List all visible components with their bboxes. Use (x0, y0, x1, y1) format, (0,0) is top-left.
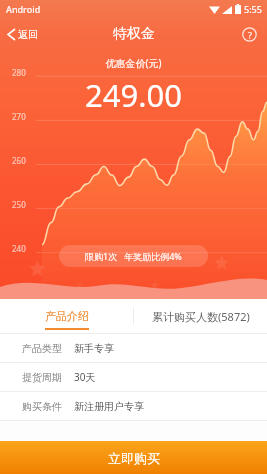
button[interactable]: 返回 (0, 18, 46, 50)
staticText: 特权金 (113, 25, 155, 43)
staticText: 产品介绍 (45, 309, 89, 323)
button[interactable]: 产品介绍 (0, 299, 133, 333)
staticText: 270 (12, 111, 26, 122)
staticText: 30天 (74, 370, 96, 384)
staticText: 240 (12, 243, 26, 254)
button[interactable]: 累计购买人数(5872) (134, 299, 267, 333)
staticText: 新手专享 (74, 342, 114, 355)
staticText: 5:55 (244, 3, 262, 15)
button[interactable]: 限购1次 年奖励比例4% (59, 245, 208, 267)
staticText: 280 (12, 67, 26, 78)
staticText: 累计购买人数(5872) (152, 309, 250, 324)
staticText: Android (6, 3, 41, 15)
button[interactable]: 立即购买 (0, 441, 267, 474)
staticText: 返回 (18, 28, 38, 41)
staticText: 250 (12, 199, 26, 210)
button[interactable]: Help (232, 18, 267, 50)
staticText: 立即购买 (108, 450, 160, 466)
staticText: 249.00 (0, 74, 267, 116)
staticText: 产品类型 (22, 342, 62, 355)
staticText: 提货周期 (22, 371, 62, 384)
staticText: 优惠金价(元) (0, 56, 267, 70)
staticText: 限购1次 年奖励比例4% (85, 250, 182, 262)
staticText: 新注册用户专享 (74, 400, 144, 413)
staticText: 购买条件 (22, 400, 62, 413)
staticText: ? (248, 29, 252, 41)
staticText: 260 (12, 155, 26, 166)
